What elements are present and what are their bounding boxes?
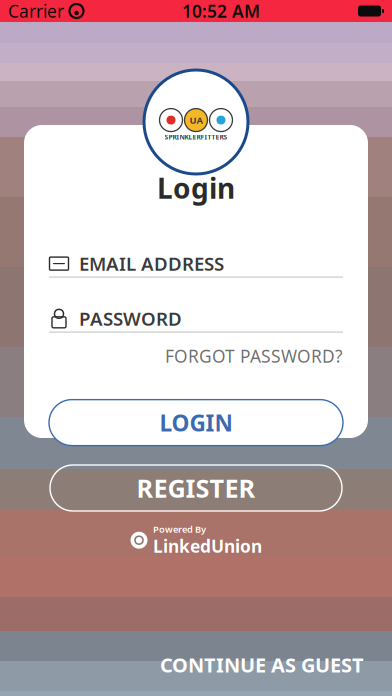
button[interactable]: CONTINUE AS GUEST <box>156 641 368 688</box>
staticText: FORGOT PASSWORD? <box>165 345 343 368</box>
staticText: EMAIL ADDRESS <box>79 251 224 276</box>
staticText: Carrier <box>8 0 64 22</box>
staticText: REGISTER <box>136 471 255 505</box>
staticText: PASSWORD <box>79 306 182 331</box>
staticText: LOGIN <box>159 407 232 438</box>
button[interactable]: REGISTER <box>50 465 342 511</box>
button[interactable]: FORGOT PASSWORD? <box>165 339 343 374</box>
staticText: Login <box>157 169 235 207</box>
staticText: LinkedUnion <box>153 534 262 557</box>
staticText: SPRINKLERFITTERS <box>164 133 227 141</box>
staticText: Powered By <box>153 523 206 535</box>
staticText: UA <box>189 114 202 126</box>
staticText: 10:52 AM <box>182 0 260 22</box>
staticText: CONTINUE AS GUEST <box>160 651 364 678</box>
button[interactable]: LOGIN <box>49 400 343 446</box>
